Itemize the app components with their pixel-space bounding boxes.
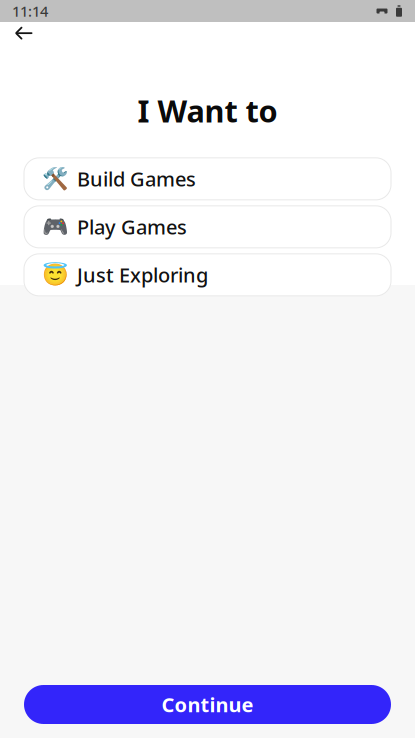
staticText: 11:14 xyxy=(12,1,48,21)
button[interactable]: Back xyxy=(4,16,44,50)
staticText: Build Games xyxy=(77,166,196,192)
button[interactable]: 😇 xyxy=(24,254,391,296)
staticText: 🎮 xyxy=(42,215,69,239)
staticText: Continue xyxy=(161,691,253,718)
button[interactable]: 🛠️ xyxy=(24,158,391,200)
button[interactable]: Continue xyxy=(24,685,391,724)
staticText: 🛠️ xyxy=(42,167,69,191)
button[interactable]: 🎮 xyxy=(24,206,391,248)
staticText: 😇 xyxy=(42,263,69,287)
staticText: Play Games xyxy=(77,214,187,240)
staticText: I Want to xyxy=(137,90,277,131)
staticText: Just Exploring xyxy=(77,262,208,288)
